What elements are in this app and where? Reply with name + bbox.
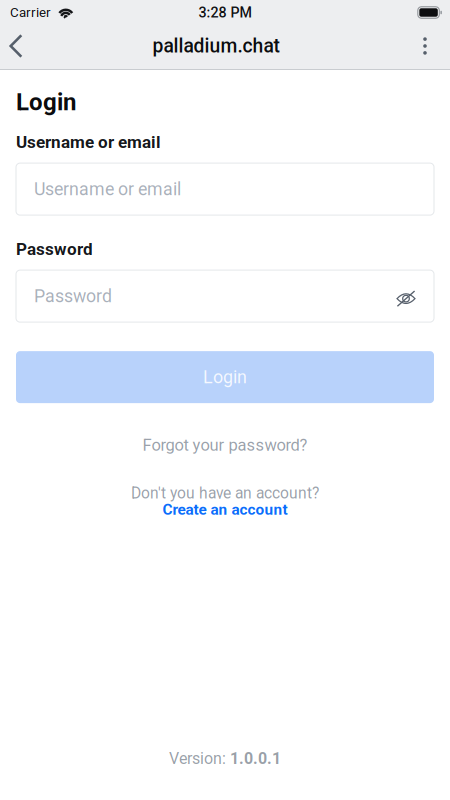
- staticText: Carrier: [10, 5, 51, 20]
- button[interactable]: Back: [0, 24, 32, 68]
- button[interactable]: More options: [400, 24, 450, 68]
- staticText: Version:: [169, 749, 230, 768]
- staticText: Forgot your password?: [142, 435, 307, 455]
- button[interactable]: Login: [16, 351, 434, 403]
- staticText: palladium.chat: [152, 35, 279, 57]
- staticText: Create an account: [162, 501, 287, 519]
- staticText: Don't you have an account?: [131, 484, 319, 502]
- button[interactable]: Forgot your password?: [16, 431, 434, 459]
- staticText: Username or email: [34, 179, 181, 199]
- staticText: Username or email: [16, 132, 161, 152]
- staticText: 3:28 PM: [198, 4, 251, 21]
- staticText: Login: [16, 88, 76, 116]
- staticText: Login: [203, 367, 247, 388]
- staticText: 1.0.0.1: [230, 749, 281, 768]
- button[interactable]: Show password: [396, 285, 416, 308]
- button[interactable]: Create an account: [162, 501, 287, 518]
- staticText: Password: [34, 286, 112, 306]
- staticText: Password: [16, 239, 93, 259]
